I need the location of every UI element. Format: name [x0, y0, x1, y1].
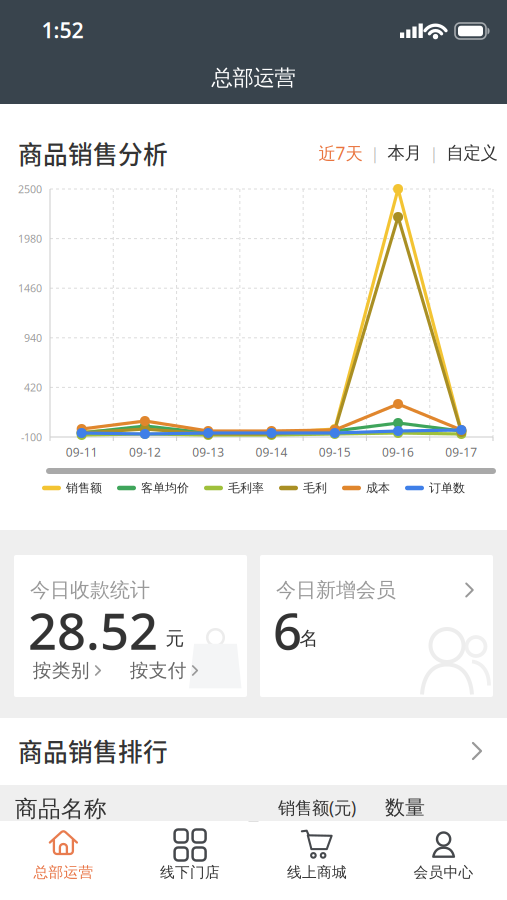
staticText: 1460 [18, 281, 42, 295]
staticText: 按支付 [130, 659, 187, 682]
staticText: | [429, 142, 438, 164]
staticText: 940 [24, 331, 42, 345]
staticText: 线下门店 [160, 863, 220, 881]
staticText: 销售额 [66, 481, 102, 495]
staticText: 商品名称 [15, 795, 107, 823]
staticText: 会员中心 [414, 863, 474, 881]
staticText: 6 [273, 596, 302, 664]
staticText: 商品销售排行 [18, 733, 168, 768]
staticText: 28.52 [28, 596, 158, 664]
staticText: 毛利率 [228, 481, 264, 495]
staticText: 近7天 [318, 141, 362, 164]
staticText: 按类别 [33, 659, 90, 682]
staticText: 1:52 [41, 16, 83, 44]
staticText: | [370, 142, 379, 164]
staticText: 客单均价 [141, 481, 189, 495]
staticText: 09-13 [192, 444, 224, 460]
staticText: 总部运营 [33, 863, 93, 881]
staticText: 订单数 [429, 481, 465, 495]
staticText: 09-15 [319, 444, 351, 460]
staticText: 2500 [18, 182, 42, 196]
staticText: 09-17 [445, 444, 477, 460]
staticText: 元 [165, 627, 184, 650]
staticText: -100 [21, 430, 42, 444]
staticText: 销售额(元) [278, 796, 356, 819]
staticText: 数量 [385, 795, 425, 820]
staticText: 名 [299, 627, 318, 650]
staticText: 本月 [387, 142, 421, 164]
staticText: 线上商城 [287, 863, 347, 881]
staticText: 成本 [366, 481, 390, 495]
staticText: 09-16 [382, 444, 414, 460]
staticText: 09-14 [255, 444, 287, 460]
staticText: 自定义 [446, 142, 497, 164]
staticText: 毛利 [303, 481, 327, 495]
staticText: 09-11 [66, 444, 98, 460]
staticText: 420 [24, 380, 42, 394]
staticText: 今日新增会员 [276, 578, 396, 602]
staticText: 今日收款统计 [30, 578, 150, 602]
staticText: 总部运营 [211, 65, 295, 91]
staticText: 商品销售分析 [18, 135, 168, 171]
staticText: 09-12 [129, 444, 161, 460]
staticText: 1980 [18, 231, 42, 246]
